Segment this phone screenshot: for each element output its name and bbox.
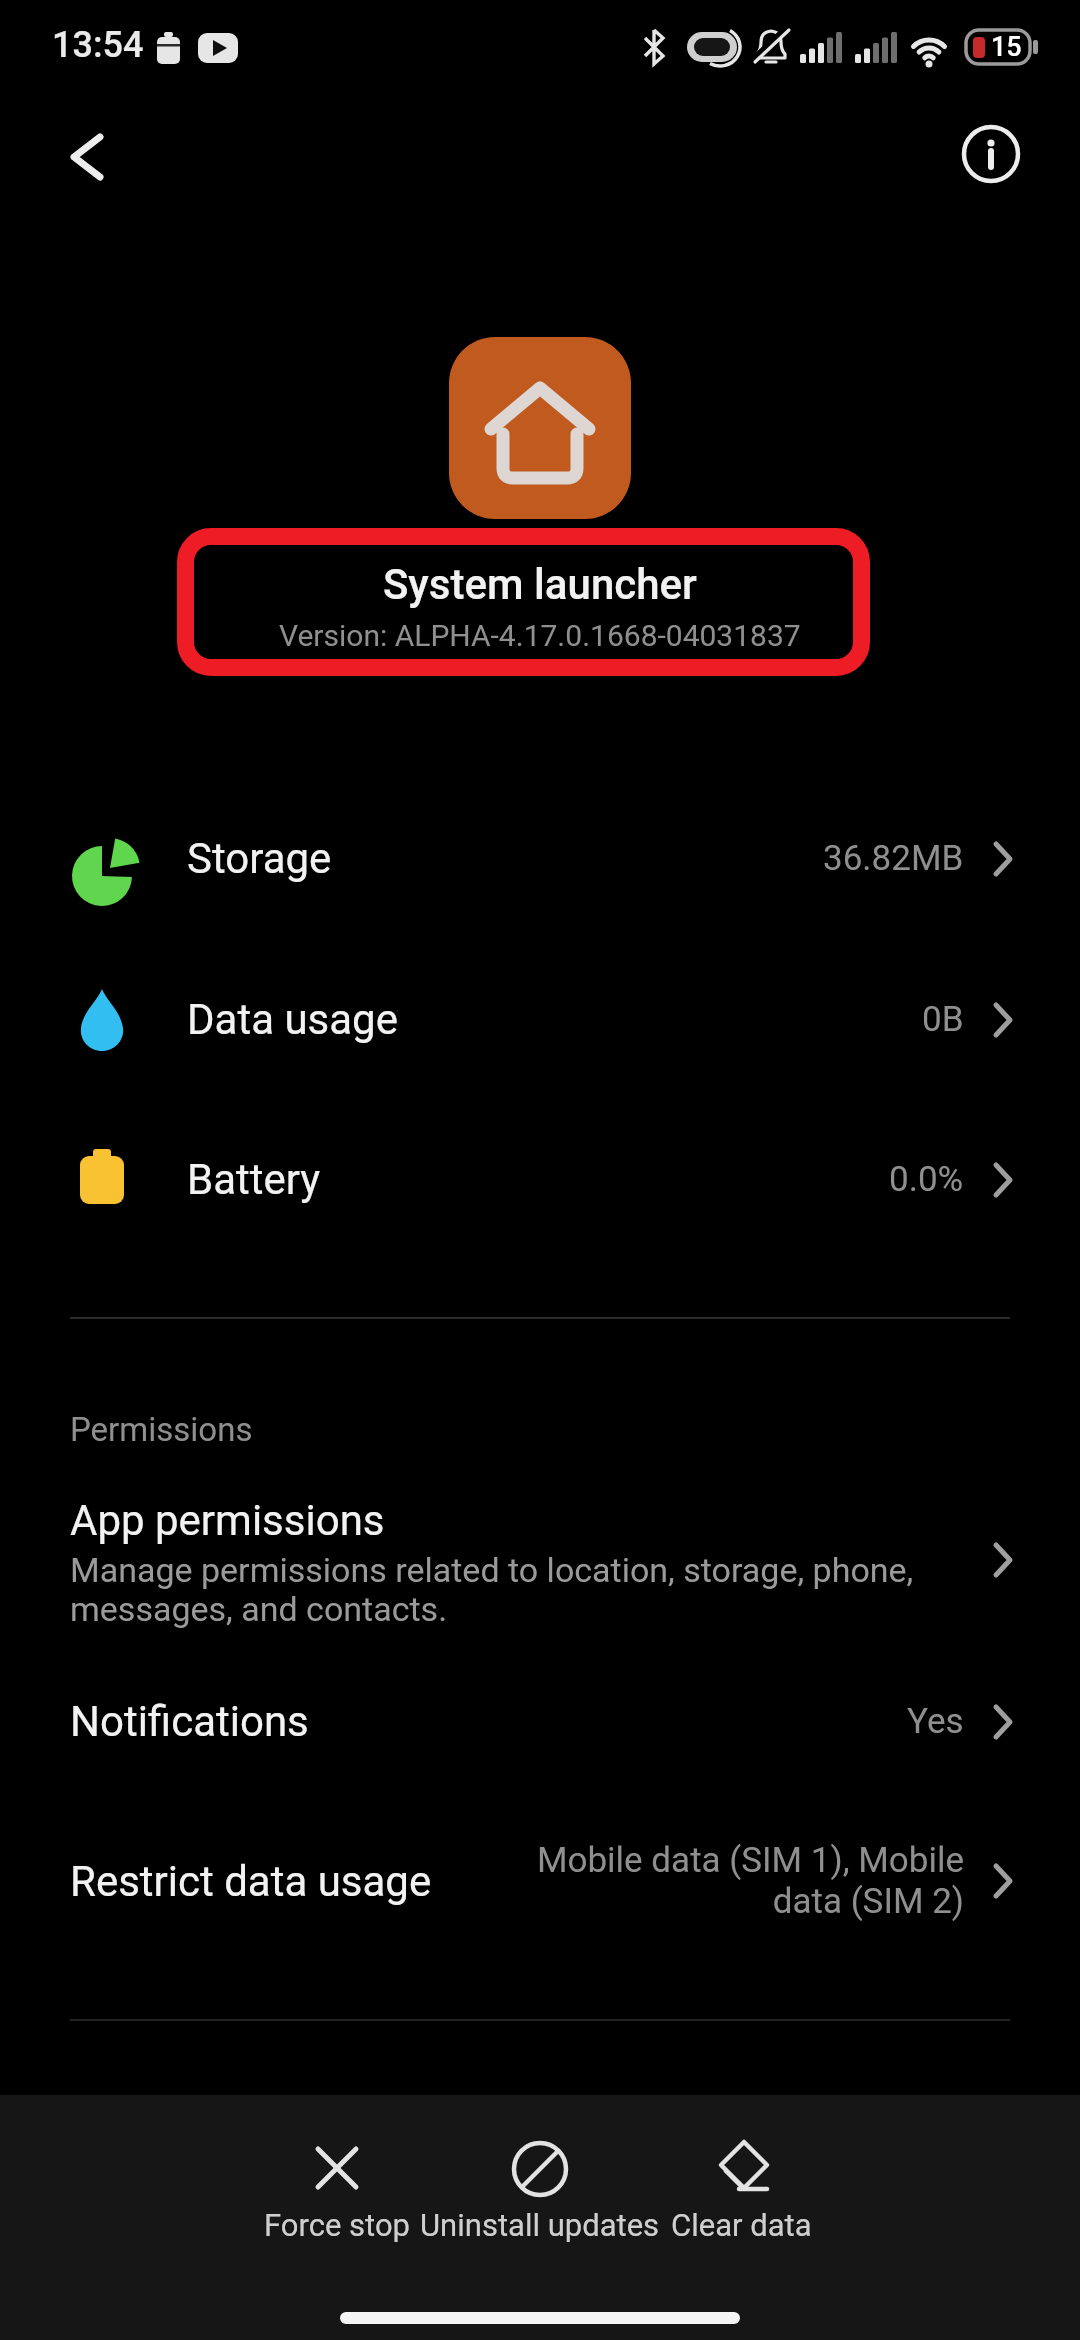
button[interactable]: Uninstall updates	[380, 2135, 700, 2295]
button[interactable]	[48, 115, 128, 195]
staticText: Restrict data usage	[70, 1857, 432, 1906]
staticText: 13:54	[52, 24, 144, 66]
staticText: Mobile data (SIM 1), Mobile data (SIM 2)	[536, 1840, 964, 1922]
button[interactable]: App permissions	[0, 1470, 1080, 1650]
staticText: Storage	[187, 834, 332, 883]
button[interactable]: Notifications	[0, 1651, 1080, 1791]
staticText: Data usage	[187, 995, 398, 1044]
staticText: Battery	[187, 1155, 321, 1204]
staticText: Permissions	[70, 1410, 253, 1449]
button[interactable]: Clear data	[581, 2135, 901, 2295]
button[interactable]: Force stop	[177, 2135, 497, 2295]
button[interactable]	[958, 121, 1024, 187]
staticText: Clear data	[671, 2207, 812, 2243]
staticText: 0.0%	[889, 1159, 964, 1200]
staticText: Notifications	[70, 1697, 309, 1746]
staticText: 0B	[922, 999, 964, 1040]
staticText: System launcher	[383, 560, 697, 609]
staticText: Force stop	[264, 2207, 410, 2243]
staticText: Yes	[907, 1701, 964, 1742]
staticText: 15	[991, 31, 1022, 63]
staticText: Uninstall updates	[420, 2207, 660, 2243]
button[interactable]: Storage	[0, 778, 1080, 938]
button[interactable]: Restrict data usage	[0, 1801, 1080, 1961]
staticText: Version: ALPHA-4.17.0.1668-04031837	[279, 618, 801, 653]
button[interactable]: Battery	[0, 1099, 1080, 1259]
staticText: Manage permissions related to location, …	[70, 1550, 914, 1629]
staticText: App permissions	[70, 1496, 385, 1545]
button[interactable]: Data usage	[0, 939, 1080, 1099]
staticText: 36.82MB	[823, 838, 964, 879]
